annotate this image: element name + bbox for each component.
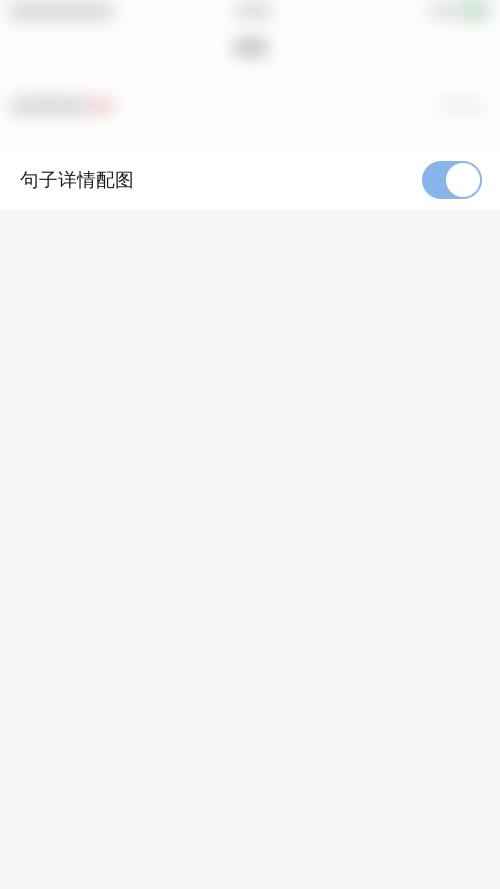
button[interactable]: 句子详情配图 xyxy=(0,150,500,210)
staticText: 句子详情配图 xyxy=(20,168,134,191)
